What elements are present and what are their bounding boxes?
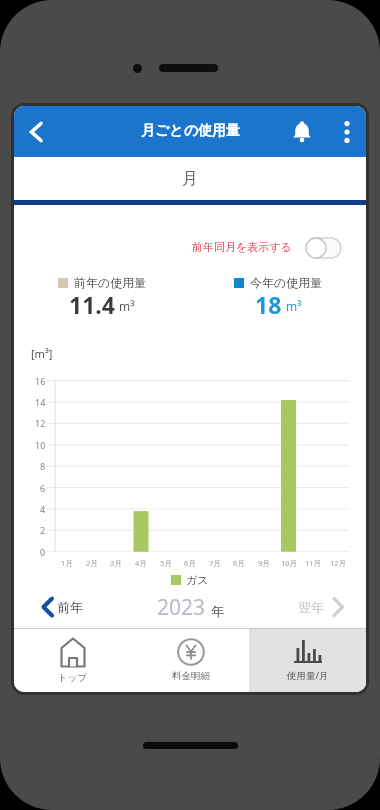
staticText: 4 bbox=[40, 503, 46, 515]
button[interactable] bbox=[21, 117, 51, 147]
staticText: 11.4 bbox=[69, 289, 115, 317]
staticText: 今年の使用量 bbox=[250, 275, 323, 290]
staticText: 料金明細 bbox=[172, 670, 210, 682]
button[interactable] bbox=[288, 118, 316, 146]
button[interactable]: 前年同月を表示する bbox=[178, 232, 360, 264]
button[interactable]: 料金明細 bbox=[132, 628, 249, 692]
staticText: 7月 bbox=[209, 558, 221, 568]
staticText: 6月 bbox=[184, 558, 196, 568]
staticText: 8月 bbox=[233, 558, 245, 568]
staticText: 18 bbox=[255, 289, 282, 317]
staticText: 使用量/月 bbox=[287, 669, 329, 682]
staticText: 14 bbox=[35, 396, 46, 408]
staticText: 10月 bbox=[281, 558, 298, 568]
staticText: トップ bbox=[58, 672, 88, 684]
button[interactable]: 使用量/月 bbox=[249, 628, 366, 692]
staticText: 前年 bbox=[57, 599, 83, 615]
staticText: 5月 bbox=[160, 558, 172, 568]
staticText: [m³] bbox=[31, 346, 53, 361]
staticText: 6 bbox=[40, 482, 46, 494]
staticText: 11月 bbox=[305, 558, 322, 568]
staticText: 月 bbox=[182, 169, 198, 189]
staticText: 1月 bbox=[61, 558, 73, 568]
staticText: 12月 bbox=[330, 558, 347, 568]
staticText: 12 bbox=[35, 417, 46, 429]
staticText: 2023 bbox=[157, 593, 206, 622]
button[interactable] bbox=[334, 117, 360, 147]
staticText: 年 bbox=[211, 603, 224, 619]
staticText: 10 bbox=[35, 439, 46, 451]
button[interactable]: 前年 bbox=[32, 592, 112, 622]
staticText: 0 bbox=[40, 546, 46, 558]
staticText: 前年同月を表示する bbox=[192, 240, 292, 254]
staticText: 8 bbox=[40, 460, 46, 472]
staticText: 3月 bbox=[110, 558, 122, 568]
staticText: m³ bbox=[119, 298, 135, 314]
button[interactable]: トップ bbox=[14, 628, 132, 692]
staticText: 月ごとの使用量 bbox=[141, 122, 240, 140]
staticText: 翌年 bbox=[298, 599, 324, 615]
staticText: 16 bbox=[35, 375, 46, 387]
staticText: 前年の使用量 bbox=[74, 275, 147, 290]
button[interactable]: 翌年 bbox=[286, 592, 356, 622]
staticText: 2 bbox=[40, 524, 46, 536]
staticText: m³ bbox=[286, 298, 302, 314]
staticText: 4月 bbox=[135, 558, 147, 568]
staticText: 2月 bbox=[86, 558, 98, 568]
staticText: ガス bbox=[186, 573, 209, 587]
staticText: 9月 bbox=[258, 558, 270, 568]
